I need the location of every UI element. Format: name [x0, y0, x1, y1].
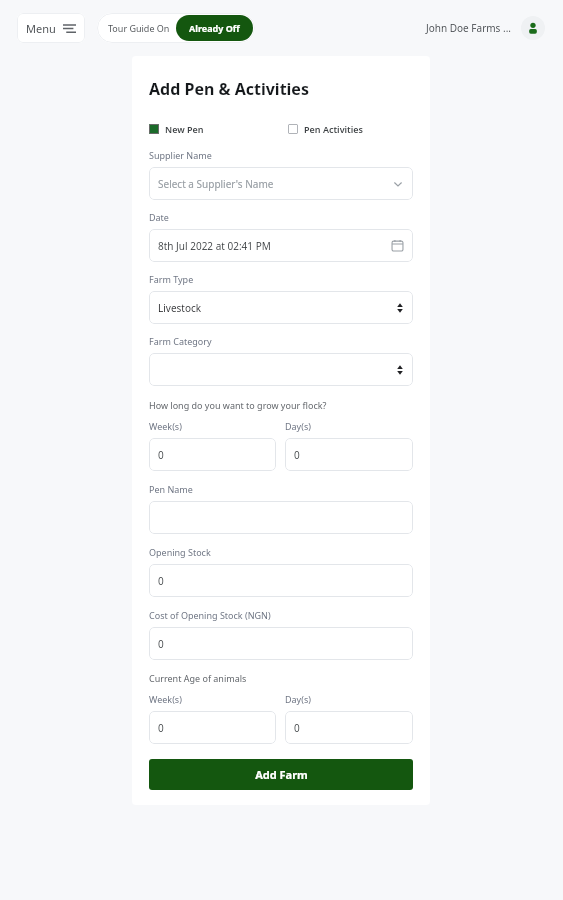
staticText: Week(s) — [149, 693, 182, 705]
button[interactable]: 0 — [149, 711, 276, 744]
staticText: Add Farm — [255, 767, 308, 782]
staticText: Menu — [26, 21, 56, 36]
staticText: Pen Activities — [304, 123, 364, 135]
staticText: Opening Stock — [149, 546, 211, 558]
staticText: 0 — [158, 721, 267, 735]
button[interactable]: Livestock — [149, 291, 413, 324]
staticText: 0 — [158, 574, 404, 588]
staticText: Day(s) — [285, 693, 311, 705]
button[interactable]: 0 — [285, 711, 413, 744]
button[interactable]: Tour Guide On — [97, 13, 255, 43]
staticText: 8th Jul 2022 at 02:41 PM — [158, 239, 391, 253]
staticText: New Pen — [165, 123, 204, 135]
other: Account — [521, 16, 545, 40]
staticText: Livestock — [158, 301, 396, 315]
button[interactable]: Add Farm — [149, 759, 413, 790]
other: Open menu — [63, 23, 76, 34]
staticText: 0 — [158, 637, 404, 651]
staticText: Cost of Opening Stock (NGN) — [149, 609, 271, 621]
button[interactable]: 0 — [149, 438, 276, 471]
staticText: Farm Type — [149, 273, 194, 285]
staticText: Add Pen & Activities — [149, 78, 309, 100]
staticText: 0 — [158, 448, 267, 462]
button[interactable]: Already Off — [176, 15, 253, 41]
button[interactable]: Pen Activities — [288, 123, 364, 135]
staticText: Date — [149, 211, 169, 223]
staticText: 0 — [294, 721, 404, 735]
staticText: Supplier Name — [149, 149, 212, 161]
staticText: Already Off — [189, 22, 240, 34]
button[interactable]: Menu — [17, 13, 85, 43]
staticText: Day(s) — [285, 420, 311, 432]
staticText: Current Age of animals — [149, 672, 247, 684]
staticText: Farm Category — [149, 335, 212, 347]
staticText: 0 — [294, 448, 404, 462]
staticText: Select a Supplier's Name — [158, 177, 392, 191]
staticText: How long do you want to grow your flock? — [149, 399, 327, 411]
button[interactable]: New Pen — [149, 123, 204, 135]
button[interactable]: 0 — [149, 564, 413, 597]
button[interactable]: Select a Supplier's Name — [149, 167, 413, 200]
staticText: Week(s) — [149, 420, 182, 432]
button[interactable]: 0 — [285, 438, 413, 471]
button[interactable] — [149, 501, 413, 534]
staticText: Tour Guide On — [108, 22, 170, 34]
button[interactable]: John Doe Farms ... — [426, 16, 545, 40]
button[interactable] — [149, 353, 413, 386]
button[interactable]: 0 — [149, 627, 413, 660]
staticText: Pen Name — [149, 483, 193, 495]
button[interactable]: 8th Jul 2022 at 02:41 PM — [149, 229, 413, 262]
staticText: John Doe Farms ... — [426, 21, 512, 35]
